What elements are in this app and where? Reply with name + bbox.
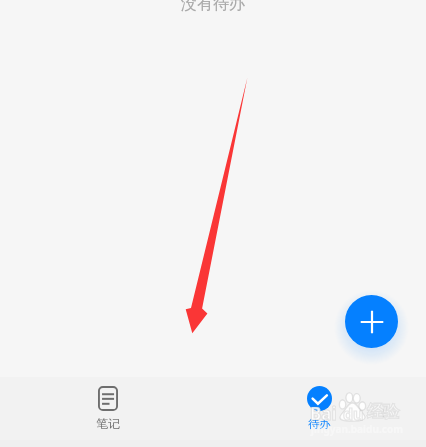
staticText: du [343, 403, 364, 425]
staticText: 经验 [367, 402, 399, 422]
button[interactable]: Add new item [345, 295, 398, 348]
staticText: jingyan.baidu.com [311, 422, 403, 436]
staticText: Bai [310, 402, 337, 425]
staticText: Bai [310, 402, 337, 425]
staticText: du [343, 403, 364, 425]
staticText: 笔记 [96, 416, 120, 431]
button[interactable]: 笔记 [0, 377, 213, 440]
staticText: 经验 [367, 402, 399, 422]
button[interactable]: 待办 [213, 377, 426, 440]
staticText: 待办 [308, 417, 331, 431]
staticText: 没有待办 [181, 0, 245, 14]
